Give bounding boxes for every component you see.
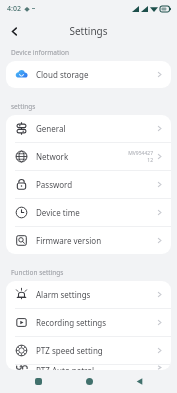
button[interactable]: Network — [6, 143, 171, 170]
staticText: settings — [11, 102, 36, 111]
staticText: PTZ Auto patrol — [36, 365, 156, 370]
button[interactable]: Password — [6, 171, 171, 198]
button[interactable]: PTZ speed setting — [6, 337, 171, 364]
button[interactable]: Back — [3, 20, 25, 42]
staticText: Device information — [11, 48, 69, 57]
button[interactable]: Recording settings — [6, 309, 171, 336]
button[interactable]: PTZ Auto patrol — [6, 365, 171, 370]
button[interactable]: Cloud storage — [6, 61, 171, 88]
button[interactable]: General — [6, 115, 171, 142]
staticText: Alarm settings — [36, 289, 156, 300]
staticText: Network — [36, 151, 128, 162]
button[interactable]: Firmware version — [6, 227, 171, 254]
staticText: General — [36, 123, 156, 134]
staticText: Function settings — [11, 268, 64, 277]
staticText: Recording settings — [36, 317, 156, 328]
staticText: Device time — [36, 207, 156, 218]
button[interactable]: Home — [77, 370, 101, 393]
button[interactable]: Device time — [6, 199, 171, 226]
staticText: MV954427 12 — [128, 150, 153, 163]
staticText: Settings — [69, 24, 108, 38]
button[interactable]: Recents — [26, 370, 50, 393]
button[interactable]: Alarm settings — [6, 281, 171, 308]
staticText: 4:02 — [7, 4, 21, 14]
staticText: PTZ speed setting — [36, 345, 156, 356]
staticText: Cloud storage — [36, 69, 156, 80]
staticText: Firmware version — [36, 235, 156, 246]
button[interactable]: Back — [127, 370, 151, 393]
staticText: Password — [36, 179, 156, 190]
